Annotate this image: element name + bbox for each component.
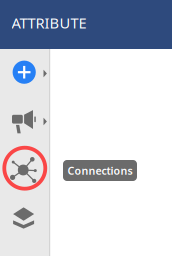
button[interactable]: Expand add menu: [39, 63, 51, 83]
staticText: ATTRIBUTE: [12, 13, 87, 33]
button[interactable]: Announcements: [12, 110, 42, 140]
button[interactable]: Layers: [9, 203, 39, 233]
button[interactable]: Add: [7, 57, 41, 87]
button[interactable]: Connections: [2, 146, 47, 191]
staticText: Connections: [67, 163, 132, 178]
button[interactable]: Expand announcements menu: [39, 111, 51, 131]
